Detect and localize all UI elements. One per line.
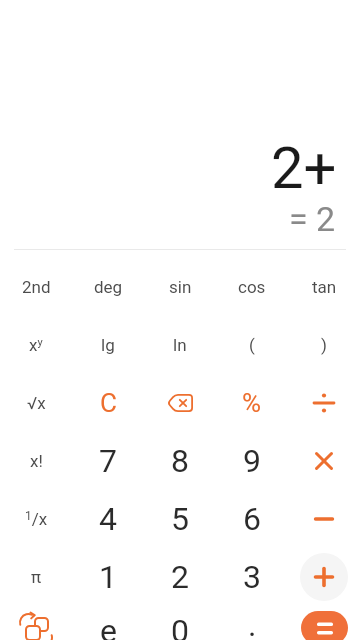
button[interactable]: 0: [144, 612, 216, 640]
staticText: 1/x: [25, 509, 48, 529]
staticText: deg: [94, 277, 123, 297]
button[interactable]: 4: [72, 490, 144, 548]
staticText: 6: [243, 500, 261, 538]
staticText: 1: [99, 558, 117, 596]
button[interactable]: .: [216, 612, 288, 640]
staticText: 2: [171, 558, 189, 596]
button[interactable]: 3: [216, 548, 288, 606]
button[interactable]: 5: [144, 490, 216, 548]
staticText: xy: [29, 335, 43, 355]
staticText: e: [100, 612, 117, 640]
button[interactable]: [288, 490, 360, 548]
button[interactable]: deg: [72, 258, 144, 316]
button[interactable]: 6: [216, 490, 288, 548]
button[interactable]: 7: [72, 432, 144, 490]
staticText: 4: [99, 500, 117, 538]
button[interactable]: √x: [0, 374, 72, 432]
button[interactable]: C: [72, 374, 144, 432]
button[interactable]: [288, 548, 360, 606]
staticText: tan: [312, 277, 337, 297]
button[interactable]: [288, 612, 360, 640]
staticText: .: [248, 606, 257, 640]
staticText: √x: [27, 393, 46, 413]
staticText: C: [100, 388, 117, 418]
button[interactable]: lg: [72, 316, 144, 374]
button[interactable]: sin: [144, 258, 216, 316]
button[interactable]: tan: [288, 258, 360, 316]
button[interactable]: [288, 432, 360, 490]
button[interactable]: [0, 612, 72, 640]
button[interactable]: π: [0, 548, 72, 606]
button[interactable]: 2nd: [0, 258, 72, 316]
staticText: x!: [30, 451, 43, 471]
button[interactable]: cos: [216, 258, 288, 316]
button[interactable]: x!: [0, 432, 72, 490]
staticText: 3: [243, 558, 261, 596]
button[interactable]: 9: [216, 432, 288, 490]
button[interactable]: 1/x: [0, 490, 72, 548]
staticText: π: [31, 567, 42, 587]
staticText: lg: [101, 335, 115, 355]
staticText: sin: [169, 277, 192, 297]
staticText: ): [321, 335, 327, 355]
button[interactable]: ln: [144, 316, 216, 374]
button[interactable]: ): [288, 316, 360, 374]
button[interactable]: 8: [144, 432, 216, 490]
button[interactable]: [144, 374, 216, 432]
button[interactable]: (: [216, 316, 288, 374]
staticText: 5: [171, 500, 189, 538]
staticText: 0: [171, 612, 189, 640]
staticText: 7: [99, 442, 117, 480]
staticText: cos: [238, 277, 266, 297]
staticText: 8: [171, 442, 189, 480]
button[interactable]: 2: [144, 548, 216, 606]
staticText: (: [249, 335, 255, 355]
button[interactable]: %: [216, 374, 288, 432]
staticText: %: [242, 388, 262, 418]
staticText: = 2: [289, 199, 336, 239]
button[interactable]: [288, 374, 360, 432]
staticText: 9: [243, 442, 261, 480]
staticText: 2nd: [22, 277, 51, 297]
staticText: 2+: [271, 134, 337, 202]
button[interactable]: 1: [72, 548, 144, 606]
button[interactable]: xy: [0, 316, 72, 374]
staticText: ln: [173, 335, 187, 355]
button[interactable]: e: [72, 612, 144, 640]
